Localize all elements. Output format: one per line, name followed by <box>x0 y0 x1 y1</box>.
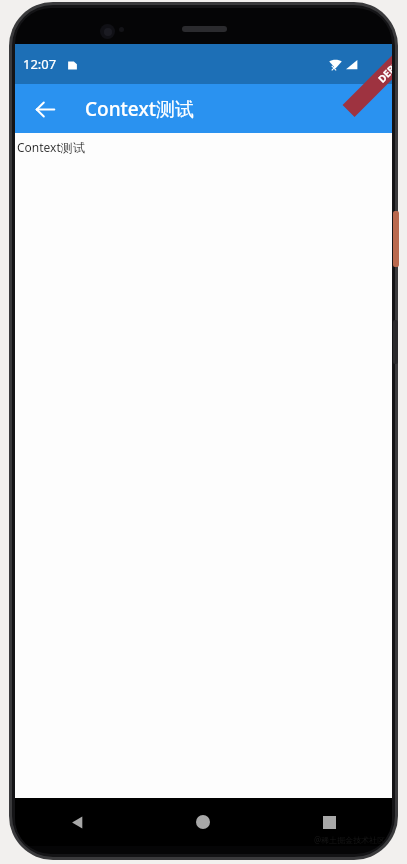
staticText: @稀土掘金技术社区 <box>314 834 386 845</box>
button[interactable]: Recent apps <box>266 798 392 846</box>
button[interactable]: Back <box>15 798 140 846</box>
staticText: Context测试 <box>85 96 194 122</box>
staticText: DEBUG <box>374 51 392 86</box>
button[interactable]: Home <box>140 798 266 846</box>
staticText: Context测试 <box>17 139 85 155</box>
staticText: 12:07 <box>23 55 57 73</box>
button[interactable]: Back <box>25 89 65 129</box>
